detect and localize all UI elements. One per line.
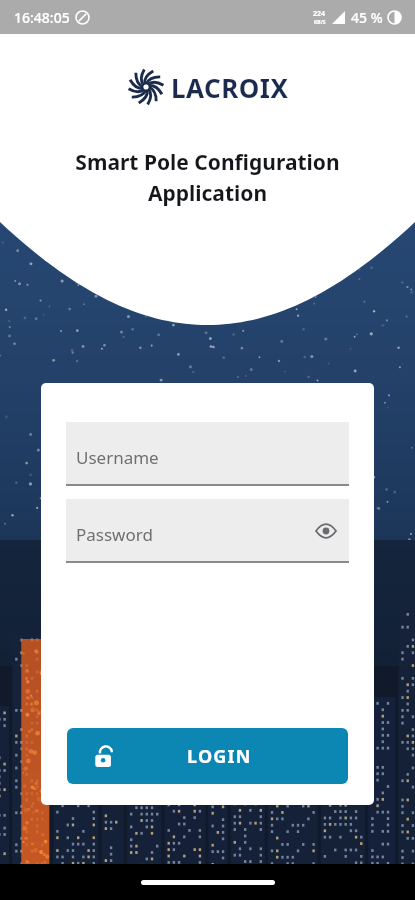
staticText: 224 [313, 9, 326, 19]
button[interactable]: Show password [311, 516, 341, 546]
staticText: Smart Pole Configuration Application [0, 148, 415, 207]
staticText: KB/S [314, 19, 326, 26]
staticText: 45 % [351, 8, 383, 27]
button[interactable]: LOGIN [67, 728, 348, 784]
button[interactable]: Password [66, 499, 349, 563]
staticText: 16:48:05 [14, 8, 70, 27]
staticText: Username [76, 446, 159, 469]
button[interactable]: Username [66, 422, 349, 486]
staticText: Password [76, 523, 153, 546]
staticText: LACROIX [171, 70, 289, 105]
staticText: LOGIN [187, 744, 252, 769]
